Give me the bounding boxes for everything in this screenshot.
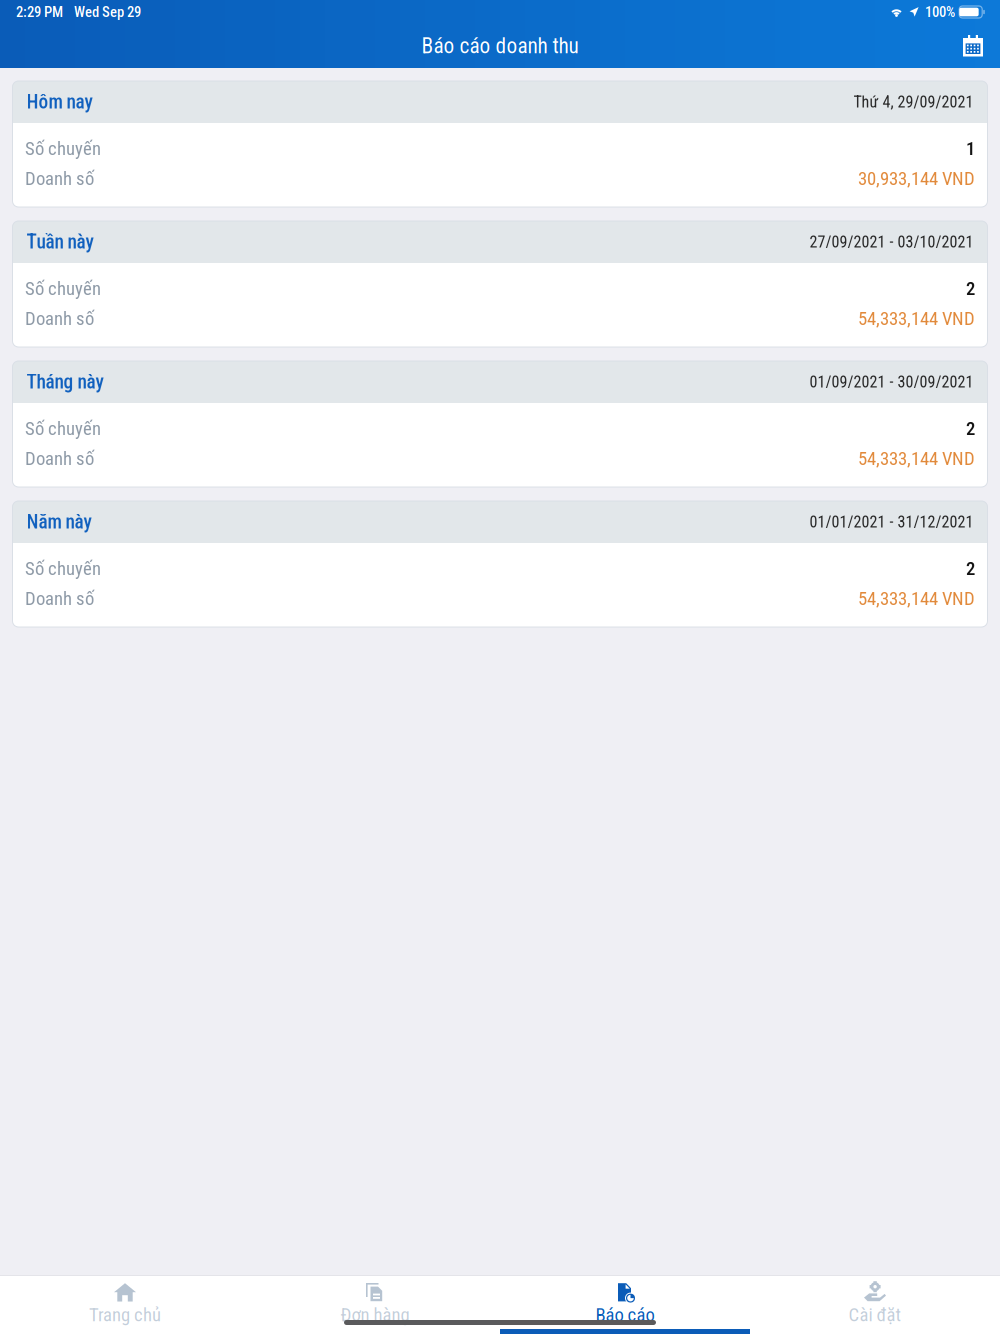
staticText: 2 (966, 278, 975, 299)
staticText: 2 (966, 558, 975, 579)
staticText: Tháng này (26, 371, 103, 393)
staticText: Wed Sep 29 (74, 3, 141, 21)
staticText: 54,333,144 VND (858, 308, 975, 329)
staticText: 2 (966, 418, 975, 439)
button[interactable]: Trang chủ (0, 1281, 250, 1321)
staticText: Doanh số (25, 448, 94, 469)
staticText: 01/01/2021 - 31/12/2021 (809, 513, 973, 531)
staticText: Số chuyến (25, 418, 101, 439)
staticText: 30,933,144 VND (858, 168, 975, 189)
button[interactable]: Tuần này (12, 221, 987, 347)
staticText: 2:29 PM (16, 3, 63, 21)
staticText: Số chuyến (25, 558, 101, 579)
staticText: 1 (966, 138, 975, 159)
button[interactable]: Hôm nay (12, 81, 987, 207)
staticText: Doanh số (25, 308, 94, 329)
staticText: Trang chủ (89, 1304, 161, 1326)
staticText: Năm này (26, 511, 91, 533)
staticText: Báo cáo doanh thu (421, 33, 578, 58)
button[interactable]: Chọn khoảng thời gian (958, 31, 988, 61)
staticText: Báo cáo (595, 1304, 654, 1326)
staticText: Thứ 4, 29/09/2021 (853, 93, 973, 111)
staticText: Doanh số (25, 588, 94, 609)
staticText: 54,333,144 VND (858, 448, 975, 469)
button[interactable]: Năm này (12, 501, 987, 627)
staticText: 54,333,144 VND (858, 588, 975, 609)
staticText: Doanh số (25, 168, 94, 189)
button[interactable]: Đơn hàng (250, 1281, 500, 1321)
staticText: Số chuyến (25, 138, 101, 159)
staticText: 27/09/2021 - 03/10/2021 (809, 233, 973, 251)
button[interactable]: Cài đặt (750, 1281, 1000, 1321)
staticText: Hôm nay (26, 91, 92, 113)
staticText: Đơn hàng (340, 1304, 409, 1326)
staticText: 100% (925, 3, 955, 21)
button[interactable]: Tháng này (12, 361, 987, 487)
staticText: Tuần này (26, 231, 93, 253)
staticText: 01/09/2021 - 30/09/2021 (809, 373, 973, 391)
staticText: Số chuyến (25, 278, 101, 299)
button[interactable]: Báo cáo (500, 1281, 750, 1321)
staticText: Cài đặt (848, 1304, 901, 1326)
